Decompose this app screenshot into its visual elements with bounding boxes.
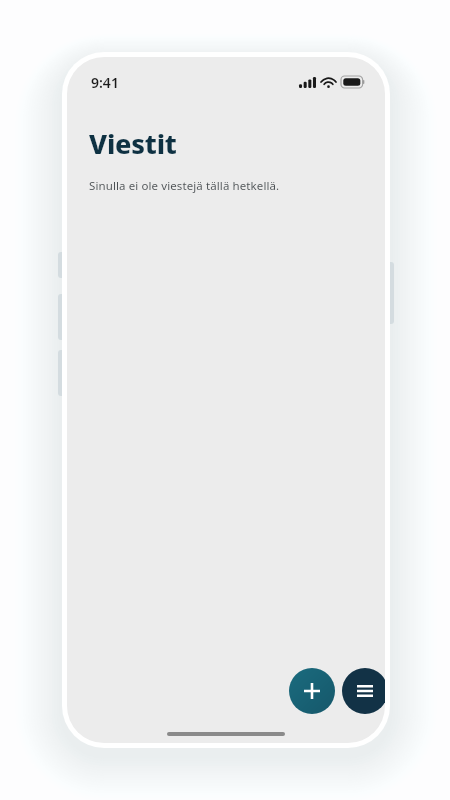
button[interactable]: Uusi viesti bbox=[289, 668, 335, 714]
staticText: Viestit bbox=[89, 125, 177, 162]
button[interactable]: Valikko bbox=[342, 668, 385, 714]
staticText: Sinulla ei ole viestejä tällä hetkellä. bbox=[89, 178, 280, 194]
staticText: 9:41 bbox=[91, 73, 119, 92]
